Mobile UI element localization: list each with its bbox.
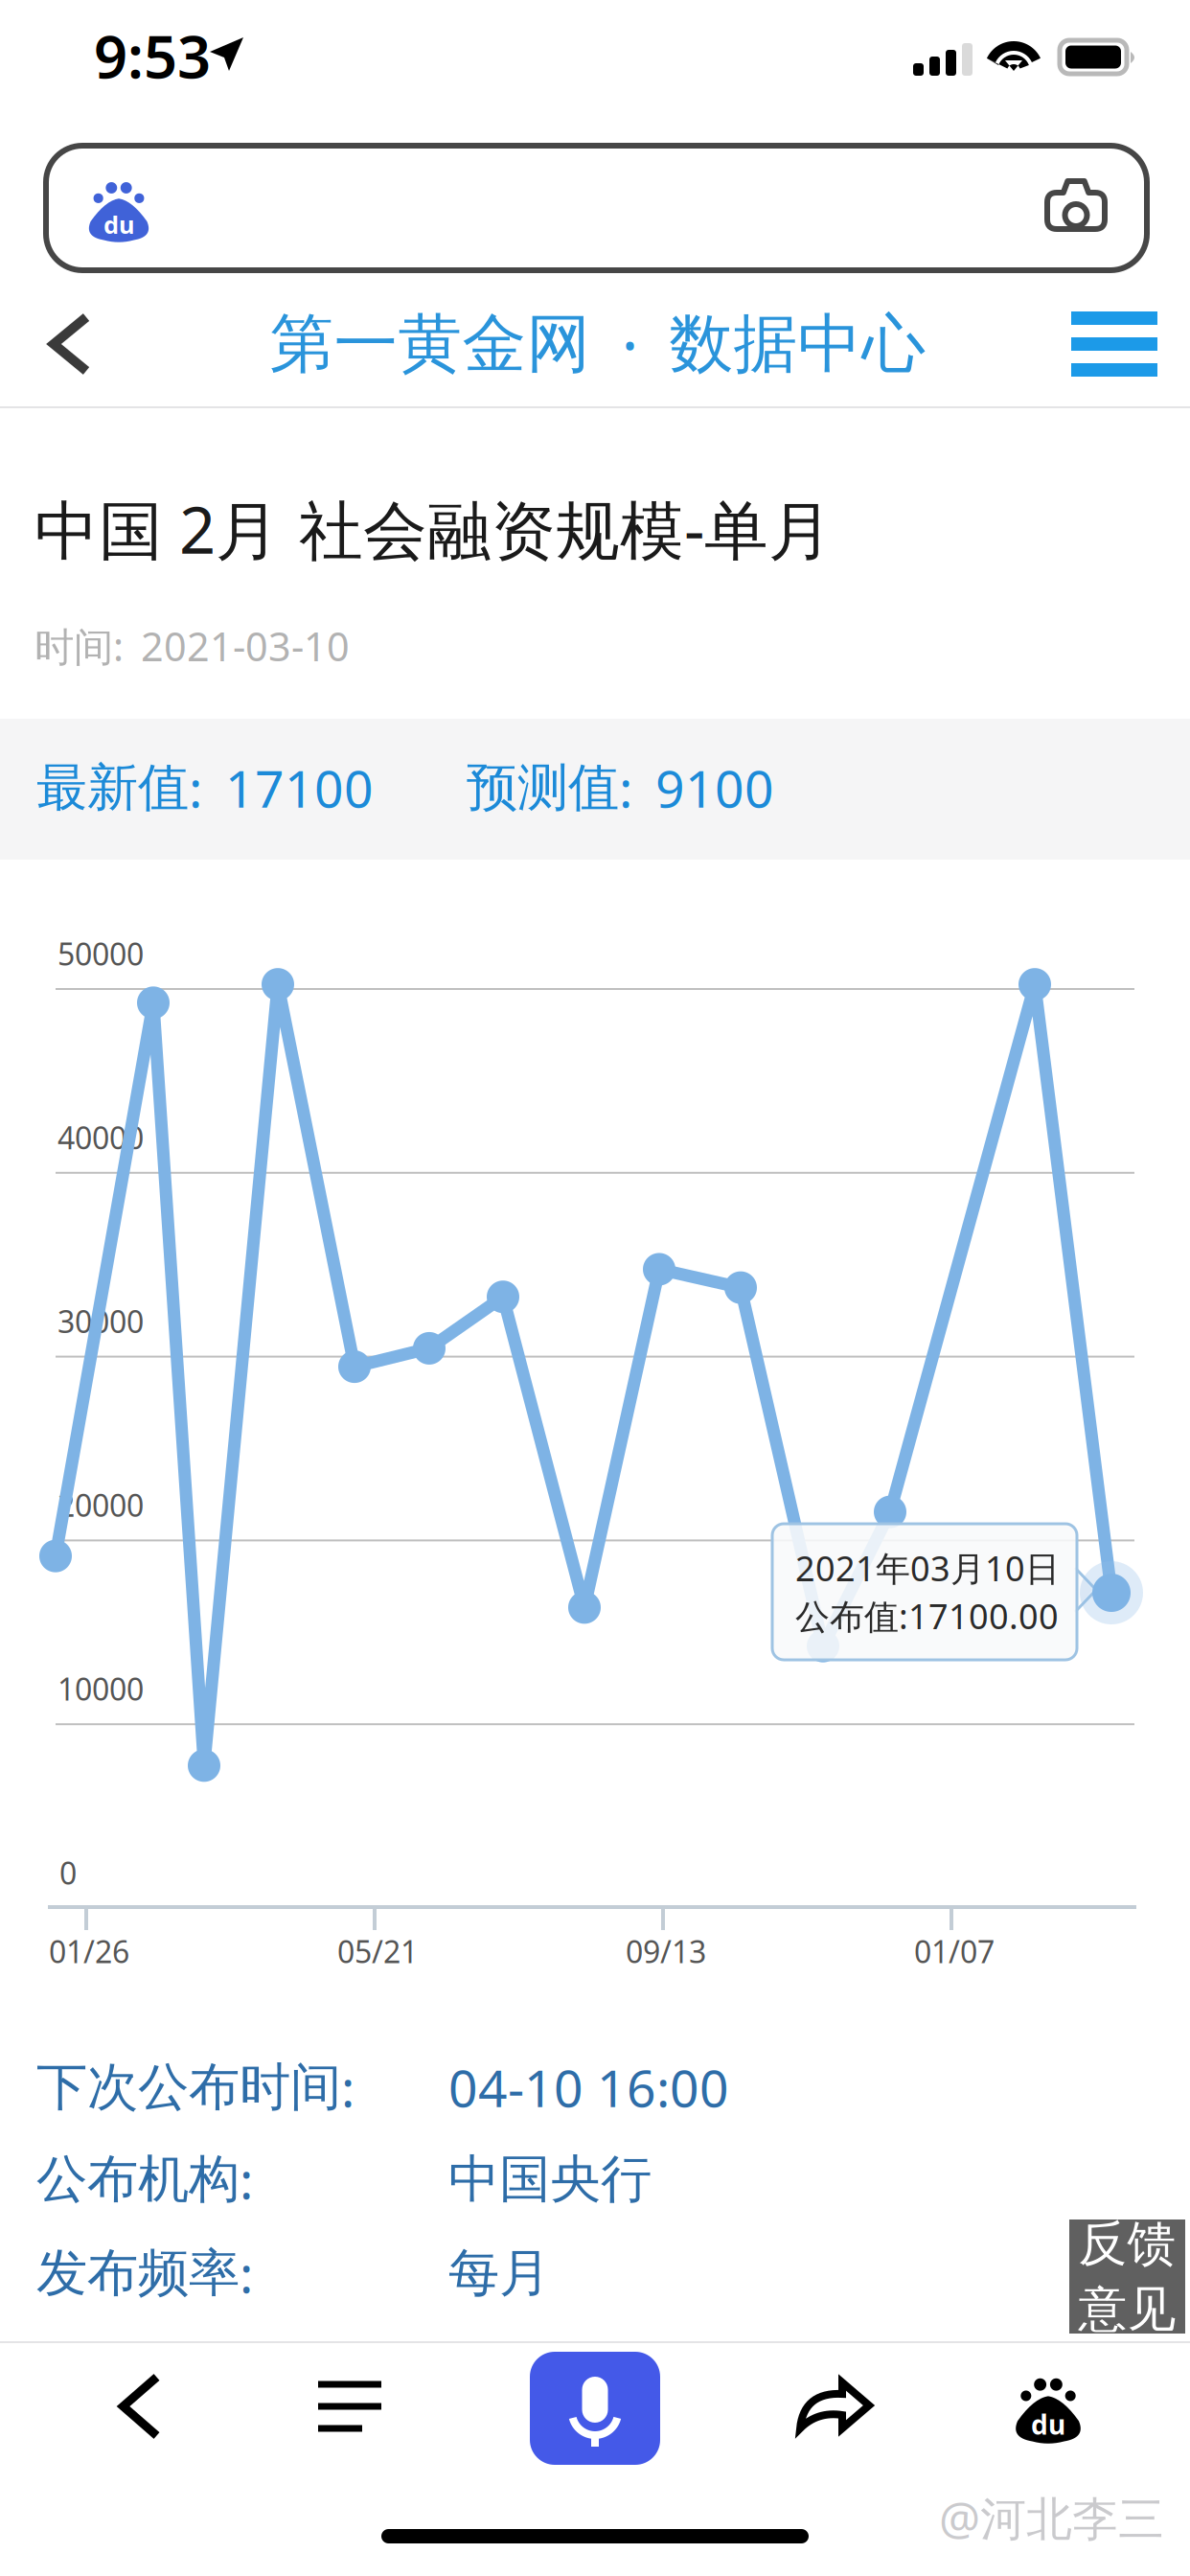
staticText: : <box>240 2239 253 2307</box>
staticText: 09/13 <box>626 1931 706 1972</box>
staticText: 2021年03月10日 <box>795 1545 1060 1591</box>
staticText: : <box>619 754 632 822</box>
staticText: 05/21 <box>337 1931 418 1972</box>
button[interactable]: Back <box>61 2348 218 2465</box>
staticText: 50000 <box>57 933 144 974</box>
button[interactable]: Menu <box>1055 283 1174 405</box>
staticText: 中国 2月 社会融资规模-单月 <box>34 487 833 571</box>
staticText: 中国央行 <box>448 2148 652 2211</box>
button[interactable]: Voice search <box>530 2352 660 2465</box>
staticText: 最新值 <box>36 756 189 819</box>
button[interactable]: Pages <box>271 2348 428 2465</box>
button[interactable]: Baidu home <box>970 2348 1127 2465</box>
staticText: 01/07 <box>914 1931 995 1972</box>
staticText: 发布频率 <box>36 2242 240 2305</box>
staticText: 10000 <box>57 1668 144 1709</box>
staticText: 0 <box>59 1852 77 1893</box>
staticText: : <box>189 754 202 822</box>
staticText: 反馈 <box>1078 2214 1176 2274</box>
staticText: 2021-03-10 <box>141 620 350 672</box>
staticText: 9:53 <box>94 17 211 95</box>
staticText: 时间: <box>34 620 124 672</box>
staticText: 01/26 <box>49 1931 129 1972</box>
staticText: 公布值:17100.00 <box>795 1593 1059 1639</box>
staticText: 9100 <box>655 754 774 822</box>
staticText: 40000 <box>57 1117 144 1158</box>
staticText: : <box>240 2145 253 2213</box>
button[interactable]: Back <box>13 283 126 405</box>
staticText: du <box>103 208 134 240</box>
staticText: 数据中心 <box>669 305 926 383</box>
staticText: 17100 <box>225 754 374 822</box>
staticText: 预测值 <box>467 756 619 819</box>
staticText: : <box>341 2053 355 2121</box>
staticText: 04-10 16:00 <box>448 2053 729 2121</box>
staticText: du <box>1031 2406 1065 2442</box>
staticText: 每月 <box>448 2242 550 2305</box>
staticText: 20000 <box>57 1485 144 1525</box>
staticText: 30000 <box>57 1301 144 1342</box>
button[interactable]: Share <box>756 2348 913 2465</box>
staticText: 第一黄金网 <box>270 305 591 383</box>
staticText: 下次公布时间 <box>36 2056 341 2119</box>
staticText: 意见 <box>1078 2279 1176 2339</box>
button[interactable]: Search <box>46 146 1147 270</box>
button[interactable]: 反馈 <box>1069 2219 1185 2334</box>
staticText: 公布机构 <box>36 2148 240 2211</box>
staticText: @河北李三 <box>939 2487 1164 2548</box>
staticText: · <box>621 302 639 386</box>
